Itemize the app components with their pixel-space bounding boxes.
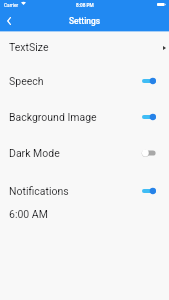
button[interactable]: Dark Mode bbox=[0, 141, 169, 165]
button[interactable]: 6:00 AM bbox=[0, 202, 169, 226]
button[interactable]: Back bbox=[1, 11, 17, 31]
button[interactable]: Speech bbox=[0, 69, 169, 93]
button[interactable]: TextSize bbox=[0, 35, 169, 59]
staticText: 6:00 AM bbox=[9, 208, 48, 220]
staticText: 8:08 PM bbox=[76, 3, 94, 9]
staticText: Carrier bbox=[4, 3, 19, 9]
staticText: Notifications bbox=[9, 185, 69, 197]
staticText: TextSize bbox=[9, 41, 49, 53]
staticText: Speech bbox=[9, 75, 44, 87]
staticText: Dark Mode bbox=[9, 147, 60, 159]
staticText: Settings bbox=[69, 16, 101, 26]
staticText: Background Image bbox=[9, 111, 97, 123]
button[interactable]: Notifications bbox=[0, 179, 169, 203]
button[interactable]: Background Image bbox=[0, 105, 169, 129]
